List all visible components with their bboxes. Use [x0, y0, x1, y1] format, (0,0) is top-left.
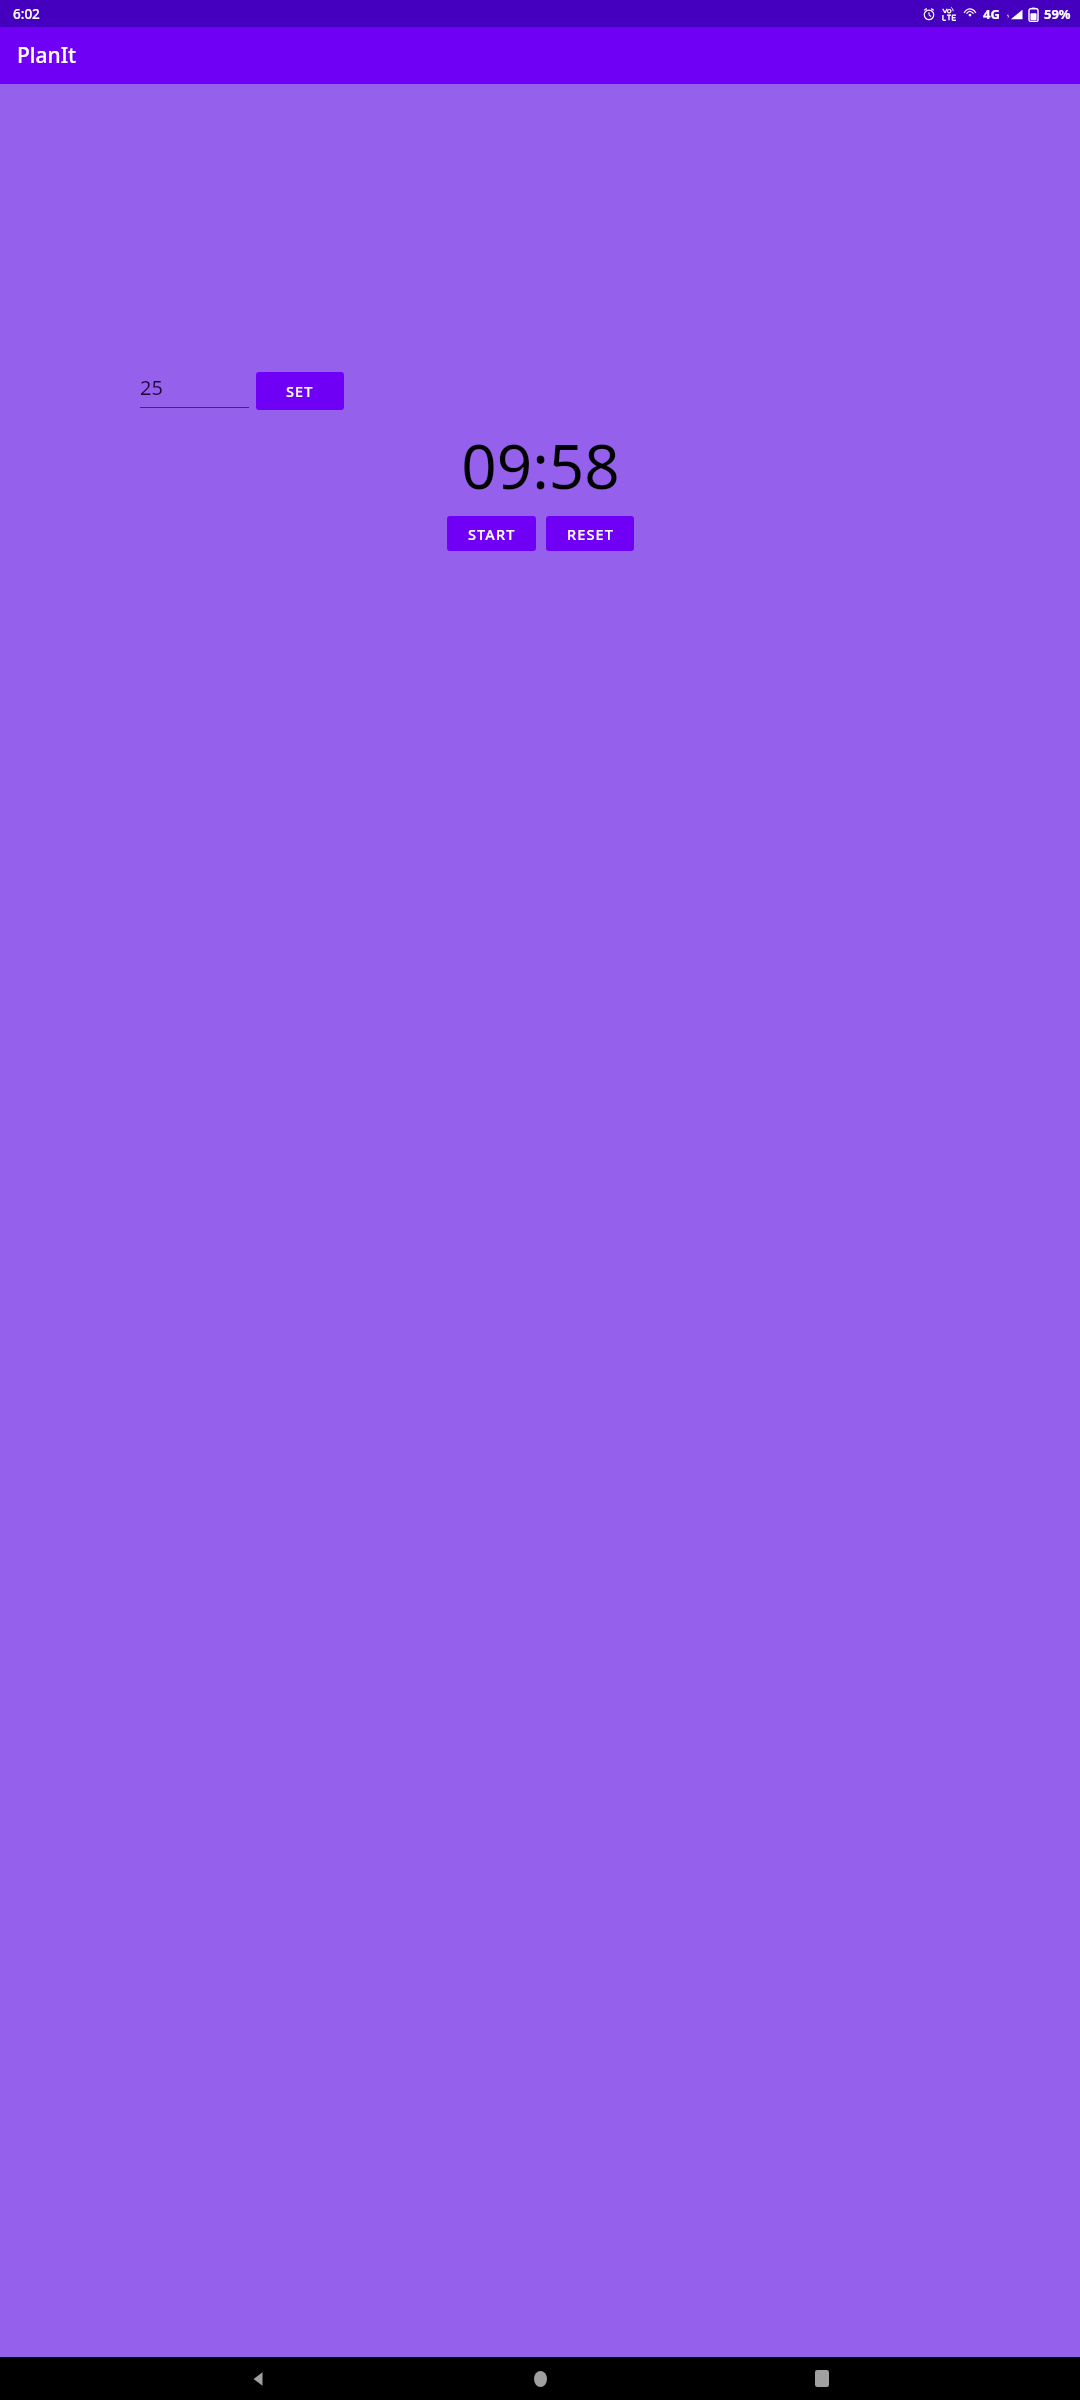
staticText: 4G — [983, 5, 1000, 23]
staticText: RESET — [567, 524, 614, 544]
staticText: 59% — [1044, 5, 1071, 23]
button[interactable]: 25 — [140, 374, 249, 408]
staticText: SET — [286, 381, 314, 401]
button[interactable]: Home — [517, 2357, 563, 2400]
staticText: 6:02 — [13, 5, 40, 23]
button[interactable]: Recent apps — [799, 2357, 845, 2400]
staticText: PlanIt — [17, 41, 77, 70]
staticText: START — [468, 524, 516, 544]
button[interactable]: RESET — [546, 516, 634, 551]
staticText: 25 — [140, 374, 163, 401]
button[interactable]: START — [447, 516, 536, 551]
button[interactable]: Back — [236, 2357, 282, 2400]
button[interactable]: SET — [256, 372, 344, 410]
staticText: 09:58 — [461, 423, 620, 507]
